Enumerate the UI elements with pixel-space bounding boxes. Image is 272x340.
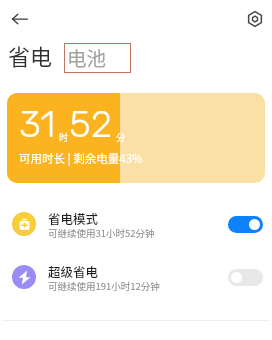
button[interactable]: 31: [7, 93, 265, 183]
staticText: 可继续使用191小时12分钟: [48, 279, 160, 293]
button[interactable]: 省电模式: [0, 212, 272, 252]
staticText: 可继续使用31小时52分钟: [48, 226, 155, 240]
staticText: 时: [59, 131, 69, 144]
staticText: 省电模式: [48, 209, 99, 227]
button[interactable]: 电池: [64, 43, 131, 73]
staticText: 省电: [8, 39, 53, 71]
button[interactable]: Back: [6, 5, 34, 33]
staticText: 52: [69, 101, 113, 146]
staticText: 电池: [67, 43, 107, 71]
staticText: 超级省电: [48, 262, 99, 280]
staticText: 分: [116, 131, 126, 144]
button[interactable]: Toggle off: [228, 269, 263, 286]
staticText: 31: [19, 101, 56, 146]
button[interactable]: 超级省电: [0, 265, 272, 305]
button[interactable]: Settings: [241, 5, 269, 33]
staticText: 可用时长 | 剩余电量43%: [19, 150, 143, 167]
button[interactable]: Toggle on: [228, 216, 263, 233]
